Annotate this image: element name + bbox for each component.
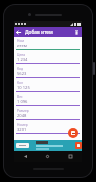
staticText: Размер [17, 108, 29, 112]
button[interactable]: Размер [14, 107, 82, 121]
button[interactable]: Recents [59, 151, 82, 162]
button[interactable]: Цена [14, 51, 82, 65]
staticText: Ном [17, 38, 24, 42]
staticText: Вес [17, 94, 23, 98]
staticText: Кол [17, 80, 23, 84]
button[interactable]: Advertisement banner [14, 140, 82, 151]
button[interactable]: Код [14, 65, 82, 79]
button[interactable]: Home [36, 151, 59, 162]
staticText: Цена [17, 52, 26, 56]
staticText: 1 234 [17, 57, 28, 63]
button[interactable]: Back [14, 151, 36, 162]
staticText: 1 096 [17, 99, 28, 105]
staticText: Номер [17, 122, 28, 126]
button[interactable]: Install [16, 143, 29, 148]
button[interactable]: Delete [72, 28, 80, 36]
staticText: 5623 [17, 71, 27, 77]
staticText: 3201 [17, 127, 27, 133]
button[interactable]: Номер [14, 121, 82, 135]
button[interactable]: Кол [14, 79, 82, 93]
button[interactable]: Вес [14, 93, 82, 107]
staticText: Добав итем [25, 29, 53, 36]
button[interactable]: Save item [68, 128, 78, 138]
button[interactable]: Open advertisement [75, 142, 82, 149]
button[interactable]: Ном [14, 37, 82, 51]
button[interactable]: Navigate up [14, 28, 23, 37]
staticText: 10 125 [17, 85, 30, 91]
staticText: 2048 [17, 113, 27, 119]
staticText: Код [17, 66, 23, 70]
staticText: итем [17, 43, 27, 49]
button[interactable]: Добав итем [25, 29, 53, 36]
